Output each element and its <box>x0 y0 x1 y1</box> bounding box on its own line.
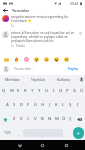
staticText: O <box>59 88 63 94</box>
staticText: V <box>34 116 37 122</box>
button[interactable]: Emoji <box>22 55 30 63</box>
staticText: F <box>27 102 30 108</box>
button[interactable]: P <box>64 84 71 98</box>
staticText: L <box>62 102 65 108</box>
button[interactable]: Teşekkür <box>25 75 51 84</box>
button[interactable]: D <box>18 98 25 112</box>
staticText: Ö <box>62 116 66 122</box>
button[interactable]: H <box>39 98 46 112</box>
staticText: Paylaş <box>68 67 78 71</box>
staticText: Yanıtla <box>16 44 25 48</box>
button[interactable]: Emoji <box>12 55 20 63</box>
button[interactable]: J <box>46 98 53 112</box>
button[interactable]: Y <box>36 84 43 98</box>
button[interactable]: Merhaba <box>0 75 25 84</box>
button[interactable]: O <box>57 84 64 98</box>
button[interactable]: T <box>29 84 36 98</box>
button[interactable]: Recents <box>62 141 71 150</box>
button[interactable]: E <box>15 84 22 98</box>
button[interactable]: Ü <box>78 84 85 98</box>
staticText: I <box>53 88 55 94</box>
button[interactable]: Kullanıcı <box>51 75 77 84</box>
staticText: Ç <box>69 116 72 122</box>
button[interactable]: Q <box>0 84 8 98</box>
staticText: , <box>18 131 19 136</box>
button[interactable]: S <box>11 98 18 112</box>
button[interactable]: Ğ <box>71 84 78 98</box>
button[interactable]: Emoji <box>2 55 10 63</box>
button[interactable]: F <box>25 98 32 112</box>
button[interactable]: I <box>50 84 57 98</box>
button[interactable]: , <box>14 126 22 140</box>
button[interactable]: Ö <box>60 112 67 126</box>
staticText: 20:44 <box>70 2 79 6</box>
button[interactable]: K <box>53 98 60 112</box>
staticText: Ş <box>69 102 72 108</box>
button[interactable]: Backspace <box>75 113 84 125</box>
button[interactable]: Paylaş <box>67 65 79 73</box>
staticText: Kullanıcı <box>57 77 71 82</box>
button[interactable]: Send <box>73 127 84 139</box>
button[interactable]: Emoji <box>52 55 60 63</box>
staticText: C <box>27 116 30 122</box>
button[interactable]: Like <box>77 32 84 38</box>
staticText: X <box>20 116 23 122</box>
staticText: B <box>41 116 44 122</box>
staticText: zelnes_b Bonusbro ve çok kuçanlılar sol … <box>11 31 76 43</box>
button[interactable]: V <box>32 112 39 126</box>
button[interactable]: Emoji <box>62 55 70 63</box>
staticText: Y <box>38 88 41 94</box>
staticText: Yorumlar <box>12 8 30 13</box>
button[interactable]: Home <box>38 141 47 150</box>
staticText: sezginbirtasarim mira programbng bir Com… <box>11 15 82 23</box>
staticText: W <box>10 88 14 94</box>
button[interactable]: zelnes_b Bonusbro ve çok kuçanlılar sol … <box>0 28 85 48</box>
staticText: N <box>48 116 52 122</box>
staticText: 1s <box>11 24 14 28</box>
staticText: Merhaba <box>5 77 20 82</box>
button[interactable]: Back <box>15 141 24 150</box>
button[interactable]: ?123 <box>0 126 14 140</box>
button[interactable]: sezginbirtasarim mira programbng bir Com… <box>0 14 85 28</box>
button[interactable]: A <box>4 98 11 112</box>
staticText: M <box>55 116 59 122</box>
staticText: Teşekkür <box>31 77 46 82</box>
staticText: K <box>55 102 58 108</box>
staticText: H <box>41 102 45 108</box>
staticText: . <box>68 131 69 136</box>
button[interactable]: L <box>60 98 67 112</box>
button[interactable]: R <box>22 84 29 98</box>
button[interactable]: Back <box>2 7 9 14</box>
button[interactable]: M <box>53 112 60 126</box>
staticText: P <box>66 88 69 94</box>
staticText: Yorum ekle... <box>14 67 67 71</box>
button[interactable]: B <box>39 112 46 126</box>
staticText: U <box>45 88 49 94</box>
button[interactable]: Shift <box>1 113 10 125</box>
button[interactable]: Ş <box>67 98 74 112</box>
button[interactable]: U <box>43 84 50 98</box>
staticText: Ü <box>80 88 84 94</box>
button[interactable]: N <box>46 112 53 126</box>
staticText: 1s <box>11 44 14 48</box>
button[interactable]: X <box>18 112 25 126</box>
button[interactable]: Emoji <box>32 55 40 63</box>
button[interactable]: W <box>8 84 15 98</box>
staticText: Z <box>13 116 16 122</box>
button[interactable]: Emoji <box>42 55 50 63</box>
staticText: I <box>77 102 79 108</box>
staticText: J <box>49 102 51 108</box>
button[interactable]: Voice input <box>77 75 85 84</box>
staticText: ?123 <box>4 131 11 135</box>
staticText: Ğ <box>73 88 77 94</box>
button[interactable]: C <box>25 112 32 126</box>
staticText: Q <box>2 88 6 94</box>
button[interactable]: I <box>74 98 81 112</box>
staticText: D <box>20 102 24 108</box>
button[interactable]: Z <box>11 112 18 126</box>
button[interactable]: Ç <box>67 112 74 126</box>
staticText: G <box>34 102 38 108</box>
button[interactable]: G <box>32 98 39 112</box>
